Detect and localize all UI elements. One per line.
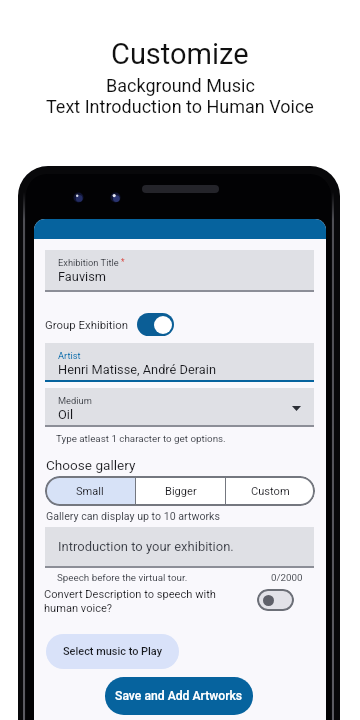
staticText: Oil — [58, 407, 74, 422]
staticText: Group Exhibition — [45, 318, 129, 331]
button[interactable]: Save and Add Artworks — [105, 677, 253, 715]
staticText: Speech before the virtual tour. — [57, 572, 188, 583]
staticText: Select music to Play — [63, 645, 163, 658]
staticText: Introduction to your exhibition. — [58, 539, 234, 554]
button[interactable]: Convert Description to speech with — [44, 588, 216, 615]
staticText: Save and Add Artworks — [115, 689, 243, 703]
staticText: Exhibition Title — [58, 257, 119, 268]
staticText: human voice? — [44, 602, 113, 615]
button[interactable]: Group Exhibition — [45, 318, 129, 331]
staticText: Medium — [58, 395, 92, 406]
staticText: Choose gallery — [46, 457, 136, 473]
staticText: Bigger — [165, 485, 197, 498]
staticText: Small — [76, 485, 104, 498]
button[interactable]: Bigger — [136, 476, 225, 506]
button[interactable]: Artist — [45, 343, 314, 380]
button[interactable]: Select music to Play — [46, 634, 179, 669]
button[interactable]: Exhibition Title — [45, 250, 314, 290]
staticText: * — [119, 257, 125, 267]
button[interactable]: Group exhibition toggle, on — [137, 313, 174, 336]
staticText: Henri Matisse, André Derain — [58, 362, 216, 377]
button[interactable] — [45, 527, 314, 567]
button[interactable]: Small — [45, 476, 135, 506]
button[interactable]: Convert to speech toggle, off — [257, 589, 294, 611]
staticText: Text Introduction to Human Voice — [46, 96, 314, 117]
staticText: Background Music — [106, 75, 255, 96]
staticText: Type atleast 1 character to get options. — [56, 433, 226, 444]
staticText: 0/2000 — [271, 572, 303, 583]
staticText: Custom — [251, 485, 290, 498]
staticText: Fauvism — [58, 269, 107, 284]
staticText: Customize — [111, 37, 249, 71]
button[interactable]: Medium — [45, 388, 314, 425]
staticText: Convert Description to speech with — [44, 588, 216, 601]
button[interactable]: Custom — [226, 476, 315, 506]
staticText: Artist — [58, 350, 81, 361]
staticText: Gallery can display up to 10 artworks — [46, 510, 220, 522]
